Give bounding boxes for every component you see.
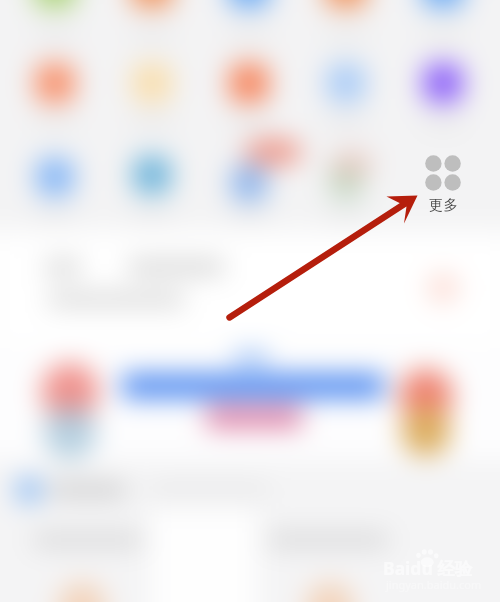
staticText: 更多 xyxy=(429,196,458,214)
button[interactable]: More xyxy=(413,152,473,214)
other: Pointer arrow xyxy=(0,0,500,602)
